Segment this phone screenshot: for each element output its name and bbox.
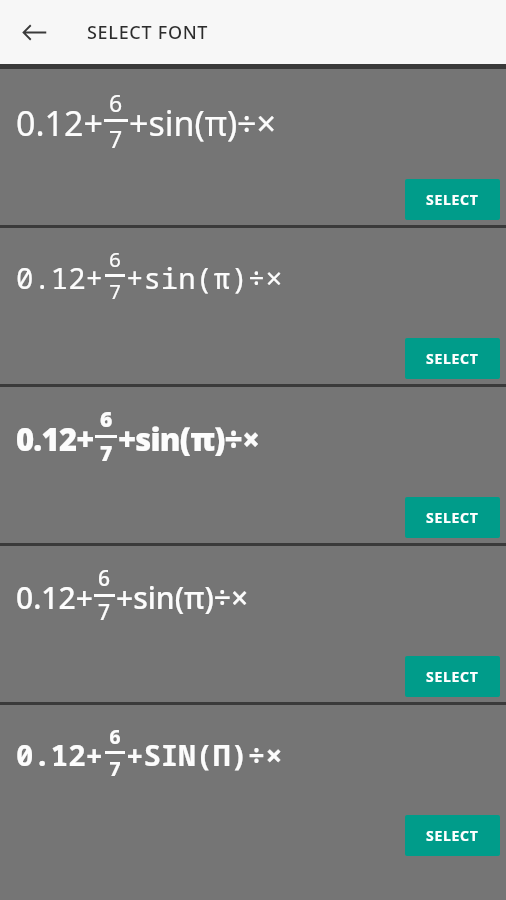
staticText: +SIN(Π)÷×	[126, 735, 283, 774]
staticText: 7	[109, 123, 123, 154]
staticText: 6	[98, 564, 111, 593]
staticText: +sin(π)÷×	[126, 258, 283, 297]
button[interactable]: SELECT	[405, 338, 500, 379]
button[interactable]: Back	[11, 9, 57, 55]
staticText: 7	[109, 755, 121, 782]
button[interactable]: SELECT	[405, 815, 500, 856]
staticText: SELECT FONT	[87, 20, 209, 45]
staticText: +sin(π)÷×	[116, 577, 249, 618]
staticText: 6	[109, 246, 121, 273]
button[interactable]: SELECT	[405, 497, 500, 538]
staticText: 7	[109, 278, 121, 305]
staticText: 0.12+	[16, 418, 94, 460]
staticText: SELECT	[426, 508, 479, 527]
button[interactable]: 0.12+	[0, 69, 506, 225]
button[interactable]: 0.12+	[0, 228, 506, 384]
staticText: +sin(π)÷×	[118, 418, 260, 460]
staticText: SELECT	[426, 826, 479, 845]
button[interactable]: 0.12+	[0, 705, 506, 861]
staticText: SELECT	[426, 190, 479, 209]
button[interactable]: SELECT	[405, 656, 500, 697]
staticText: 6	[109, 723, 121, 750]
staticText: 0.12+	[16, 577, 93, 618]
staticText: 0.12+	[16, 258, 104, 297]
staticText: 6	[100, 405, 113, 434]
staticText: 0.12+	[16, 735, 104, 774]
staticText: 7	[100, 439, 113, 468]
staticText: 7	[98, 598, 111, 627]
button[interactable]: SELECT	[405, 179, 500, 220]
staticText: SELECT	[426, 349, 479, 368]
staticText: 0.12+	[16, 100, 103, 146]
staticText: +sin(π)÷×	[129, 100, 277, 146]
button[interactable]: 0.12+	[0, 387, 506, 543]
staticText: 6	[109, 87, 123, 118]
button[interactable]: 0.12+	[0, 546, 506, 702]
staticText: SELECT	[426, 667, 479, 686]
